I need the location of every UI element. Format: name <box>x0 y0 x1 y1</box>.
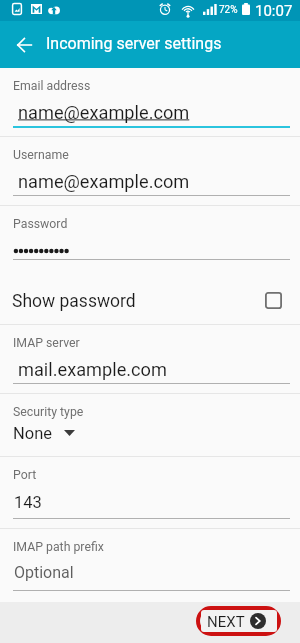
staticText: 143 <box>14 493 42 512</box>
staticText: IMAP server <box>13 336 80 350</box>
staticText: name@example.com <box>18 171 190 192</box>
staticText: 10:07 <box>255 2 293 20</box>
button[interactable]: Username <box>0 137 300 206</box>
button[interactable]: Password <box>0 206 300 266</box>
button[interactable]: Email address <box>0 68 300 137</box>
staticText: Port <box>13 468 37 482</box>
staticText: Incoming server settings <box>46 34 222 53</box>
staticText: Show password <box>12 291 136 312</box>
button[interactable]: Navigate up <box>6 21 42 68</box>
button[interactable]: NEXT <box>201 610 277 632</box>
button[interactable]: IMAP path prefix <box>0 529 300 601</box>
staticText: mail.example.com <box>18 359 167 380</box>
button[interactable]: Port <box>0 457 300 529</box>
staticText: Optional <box>14 563 74 582</box>
staticText: name@example.com <box>18 102 190 123</box>
button[interactable]: Security type <box>0 394 300 457</box>
staticText: NEXT <box>207 613 245 631</box>
staticText: Email address <box>13 79 91 93</box>
staticText: Password <box>13 217 68 231</box>
staticText: IMAP path prefix <box>13 540 104 554</box>
staticText: Username <box>13 148 69 162</box>
staticText: Security type <box>13 405 84 419</box>
button[interactable]: IMAP server <box>0 325 300 394</box>
staticText: 72% <box>219 4 238 16</box>
staticText: None <box>13 424 53 443</box>
button[interactable]: Show password <box>0 266 300 325</box>
